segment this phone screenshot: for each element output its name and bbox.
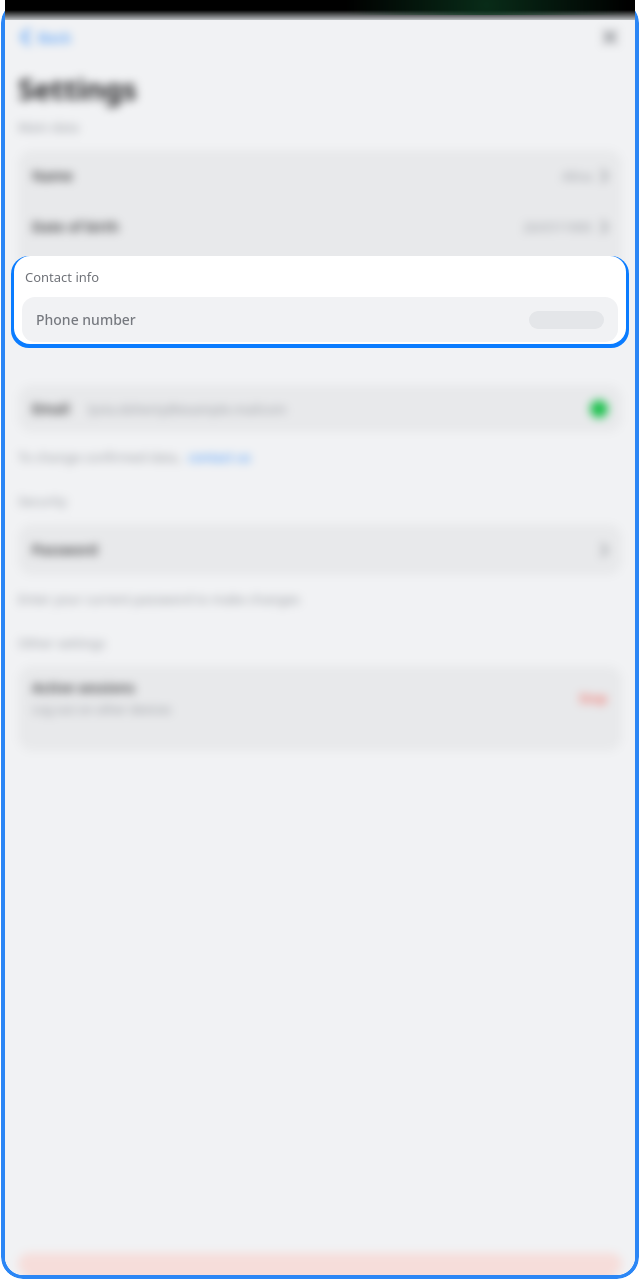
staticText: Phone number <box>36 310 136 329</box>
staticText: lyvia.doherty@example.mailcom <box>88 400 287 418</box>
staticText: Email <box>32 399 70 418</box>
staticText: To change confirmed data, <box>18 448 188 466</box>
button[interactable]: Active sessions <box>18 666 622 729</box>
staticText: Settings <box>18 69 137 108</box>
staticText: Back <box>38 27 72 47</box>
staticText: Log out on other devices <box>32 701 172 717</box>
staticText: Contact info <box>25 268 100 286</box>
button[interactable]: Contact info <box>14 256 626 344</box>
button[interactable]: Date of birth <box>18 201 622 252</box>
button[interactable]: Country of registration <box>18 252 622 303</box>
staticText: Security <box>18 492 67 510</box>
staticText: Main data <box>18 118 80 136</box>
staticText: Enter your current password to make chan… <box>18 590 301 608</box>
staticText: Name <box>32 166 73 185</box>
button[interactable]: Name <box>18 150 622 201</box>
button[interactable]: Stop <box>579 689 608 707</box>
button[interactable]: contact us <box>188 448 251 466</box>
staticText: Date of birth <box>32 217 119 236</box>
staticText: Alina <box>562 167 593 185</box>
staticText: Active sessions <box>32 678 135 697</box>
button[interactable]: Email <box>18 385 622 432</box>
button[interactable]: Close <box>597 24 623 50</box>
button[interactable]: Back <box>17 23 76 51</box>
staticText: Country of registration <box>32 268 189 287</box>
button[interactable]: Phone number <box>22 297 618 342</box>
button[interactable] <box>18 1253 622 1275</box>
button[interactable]: Password <box>18 524 622 575</box>
staticText: Password <box>32 540 98 559</box>
staticText: 20/07/1995 <box>523 218 593 236</box>
staticText: Other settings <box>18 634 106 652</box>
